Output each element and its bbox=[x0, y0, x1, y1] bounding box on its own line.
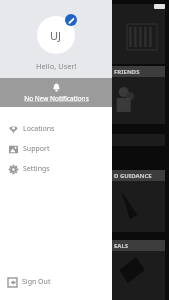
staticText: Hello, User! bbox=[36, 61, 77, 71]
staticText: D GUIDANCE bbox=[114, 172, 152, 180]
staticText: Locations bbox=[23, 124, 55, 134]
button[interactable]: Edit profile bbox=[35, 14, 77, 56]
button[interactable]: No New Notifications bbox=[0, 78, 112, 107]
button[interactable]: Locations bbox=[0, 119, 112, 139]
staticText: Support bbox=[23, 144, 50, 154]
button[interactable]: Support bbox=[0, 139, 112, 159]
staticText: UJ bbox=[50, 28, 62, 43]
staticText: Settings bbox=[23, 164, 50, 174]
button[interactable]: FRIENDS bbox=[112, 66, 165, 124]
staticText: No New Notifications bbox=[24, 94, 89, 103]
button[interactable] bbox=[112, 4, 165, 64]
button[interactable]: Settings bbox=[0, 159, 112, 179]
staticText: Sign Out bbox=[22, 277, 51, 287]
button[interactable]: Sign Out bbox=[0, 271, 112, 293]
button[interactable]: EALS bbox=[112, 240, 165, 300]
staticText: EALS bbox=[114, 242, 129, 250]
button[interactable]: D GUIDANCE bbox=[112, 170, 165, 232]
staticText: FRIENDS bbox=[114, 68, 140, 76]
